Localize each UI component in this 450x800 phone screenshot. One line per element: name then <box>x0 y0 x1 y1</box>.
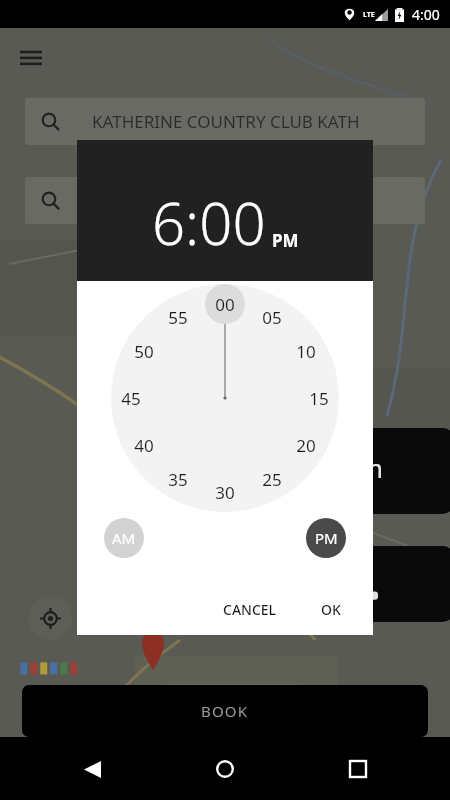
button[interactable]: 30 <box>208 480 242 504</box>
staticText: PM <box>315 528 338 548</box>
button[interactable]: 25 <box>255 467 289 491</box>
button[interactable]: 1 <box>336 546 450 622</box>
staticText: AM <box>112 528 136 548</box>
staticText: lon <box>346 451 384 485</box>
staticText: 50 <box>134 340 154 363</box>
button[interactable]: 40 <box>127 433 161 457</box>
button[interactable]: 05 <box>255 305 289 329</box>
staticText: KATHERINE COUNTRY CLUB KATH <box>92 110 360 133</box>
staticText: OK <box>321 600 341 619</box>
button[interactable]: PM <box>272 229 299 252</box>
staticText: 05 <box>262 306 282 329</box>
staticText: 1 <box>365 554 376 580</box>
staticText: LTE <box>363 10 375 20</box>
staticText: 30 <box>215 481 235 504</box>
staticText: 45 <box>121 387 141 410</box>
staticText: 10 <box>296 340 316 363</box>
button[interactable]: 45 <box>114 386 148 410</box>
button[interactable]: PM <box>306 518 346 558</box>
button[interactable]: Menu <box>14 42 48 76</box>
button[interactable]: 15 <box>302 386 336 410</box>
button[interactable]: PETRINI <box>25 177 425 224</box>
staticText: 4:00 <box>412 5 440 24</box>
button[interactable]: 00 <box>208 292 242 316</box>
staticText: 35 <box>168 468 188 491</box>
button[interactable]: 50 <box>127 339 161 363</box>
staticText: 55 <box>168 306 188 329</box>
staticText: 00 <box>215 293 235 316</box>
staticText: BOOK <box>201 701 249 721</box>
button[interactable]: Home <box>203 747 247 791</box>
button[interactable]: OK <box>309 592 353 627</box>
button[interactable]: 35 <box>161 467 195 491</box>
staticText: 25 <box>262 468 282 491</box>
button[interactable]: 55 <box>161 305 195 329</box>
button[interactable]: 20 <box>289 433 323 457</box>
button[interactable]: BOOK <box>22 685 428 737</box>
staticText: 6:00 <box>152 183 266 262</box>
button[interactable]: My location <box>28 596 72 640</box>
staticText: PM <box>272 229 299 252</box>
button[interactable]: Back <box>70 747 114 791</box>
staticText: 40 <box>134 434 154 457</box>
staticText: 15 <box>309 387 329 410</box>
button[interactable]: KATHERINE COUNTRY CLUB KATH <box>25 98 425 145</box>
button[interactable]: AM <box>104 518 144 558</box>
button[interactable]: 10 <box>289 339 323 363</box>
button[interactable]: 6:00 <box>152 183 266 262</box>
button[interactable]: Recent apps <box>336 747 380 791</box>
button[interactable]: CANCEL <box>211 592 289 627</box>
button[interactable]: 2 AM <box>336 428 450 514</box>
staticText: 20 <box>296 434 316 457</box>
staticText: CANCEL <box>223 600 277 619</box>
